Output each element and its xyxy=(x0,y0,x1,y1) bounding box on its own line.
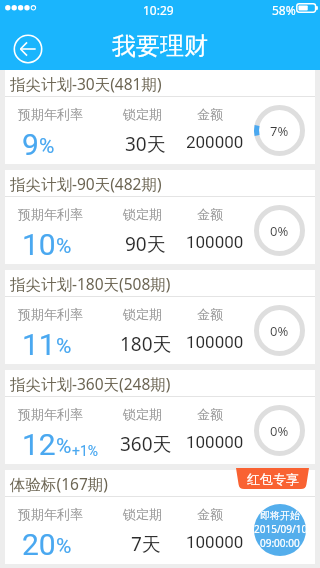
staticText: 金额 xyxy=(197,106,223,122)
staticText: 10:29 xyxy=(143,2,174,18)
staticText: 0% xyxy=(270,422,289,440)
staticText: 锁定期 xyxy=(123,206,162,222)
staticText: % xyxy=(56,334,72,359)
staticText: 100000 xyxy=(186,532,244,552)
staticText: 金额 xyxy=(197,306,223,322)
staticText: 指尖计划-30天(481期) xyxy=(10,73,162,94)
staticText: % xyxy=(39,134,55,159)
staticText: 20 xyxy=(22,527,56,562)
staticText: 7天 xyxy=(131,531,161,557)
button[interactable]: Back xyxy=(13,34,43,64)
staticText: 0% xyxy=(270,222,289,240)
staticText: % xyxy=(56,434,72,459)
staticText: 11 xyxy=(22,327,56,362)
button[interactable]: 红包专享 xyxy=(236,468,309,489)
button[interactable]: 指尖计划-30天(481期) xyxy=(5,70,315,164)
staticText: 09:00:00 xyxy=(260,536,300,550)
staticText: 预期年利率 xyxy=(18,106,83,122)
staticText: 30天 xyxy=(125,131,166,157)
staticText: 锁定期 xyxy=(123,406,162,422)
staticText: 180天 xyxy=(120,331,172,357)
staticText: 体验标(167期) xyxy=(10,473,108,494)
staticText: 9 xyxy=(22,127,39,162)
staticText: 指尖计划-360天(248期) xyxy=(10,373,171,394)
staticText: 预期年利率 xyxy=(18,506,83,522)
staticText: 12 xyxy=(22,427,56,462)
staticText: 即将开始 xyxy=(260,509,300,522)
button[interactable]: 指尖计划-180天(508期) xyxy=(5,270,315,364)
button[interactable]: 指尖计划-90天(482期) xyxy=(5,170,315,264)
staticText: 360天 xyxy=(120,431,172,457)
staticText: +1% xyxy=(72,443,99,459)
button[interactable]: 体验标(167期) xyxy=(5,470,315,564)
staticText: % xyxy=(56,534,72,559)
staticText: 200000 xyxy=(186,132,244,152)
staticText: 锁定期 xyxy=(123,506,162,522)
staticText: 100000 xyxy=(186,232,244,252)
staticText: 0% xyxy=(270,322,289,340)
staticText: 金额 xyxy=(197,406,223,422)
staticText: 预期年利率 xyxy=(18,406,83,422)
staticText: % xyxy=(56,234,72,259)
staticText: 红包专享 xyxy=(247,471,299,487)
staticText: 2015/09/10 xyxy=(254,522,306,536)
button[interactable]: 指尖计划-360天(248期) xyxy=(5,370,315,464)
staticText: 指尖计划-180天(508期) xyxy=(10,273,171,294)
staticText: 100000 xyxy=(186,332,244,352)
staticText: 7% xyxy=(270,122,289,140)
staticText: 10 xyxy=(22,227,56,262)
staticText: 锁定期 xyxy=(123,106,162,122)
staticText: 100000 xyxy=(186,432,244,452)
staticText: 我要理财 xyxy=(112,31,208,61)
staticText: 58% xyxy=(272,2,296,18)
staticText: 预期年利率 xyxy=(18,206,83,222)
staticText: 金额 xyxy=(197,206,223,222)
staticText: 90天 xyxy=(125,231,166,257)
staticText: 预期年利率 xyxy=(18,306,83,322)
staticText: 指尖计划-90天(482期) xyxy=(10,173,162,194)
staticText: 金额 xyxy=(197,506,223,522)
staticText: 锁定期 xyxy=(123,306,162,322)
